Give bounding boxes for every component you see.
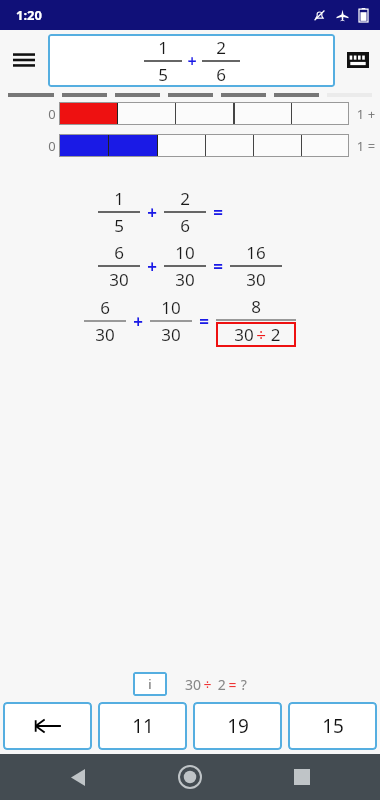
staticText: 15 xyxy=(322,713,344,739)
staticText: 19 xyxy=(227,713,249,739)
button[interactable]: Backspace xyxy=(3,702,92,750)
staticText: 30 xyxy=(161,323,181,346)
staticText: 1 = xyxy=(352,137,380,155)
button[interactable]: i xyxy=(133,672,167,696)
staticText: 2 xyxy=(180,187,190,210)
staticText: 6 xyxy=(100,296,110,319)
staticText: 1 + xyxy=(352,105,380,123)
staticText: 16 xyxy=(246,241,266,264)
staticText: 1 xyxy=(114,187,124,210)
staticText: 5 xyxy=(158,63,168,86)
staticText: 30 xyxy=(246,268,266,291)
staticText: 30 xyxy=(175,268,195,291)
staticText: 6 xyxy=(180,214,190,237)
staticText: 1:20 xyxy=(16,6,42,24)
staticText: 2 xyxy=(212,675,228,694)
staticText: + xyxy=(147,201,157,224)
staticText: + xyxy=(147,255,157,278)
staticText: ÷ xyxy=(203,675,212,694)
button[interactable]: 1 xyxy=(48,34,335,87)
staticText: 30 xyxy=(95,323,115,346)
button[interactable] xyxy=(59,102,349,125)
button[interactable]: 19 xyxy=(193,702,282,750)
staticText: 30 xyxy=(109,268,129,291)
staticText: 0 xyxy=(48,137,56,155)
button[interactable]: Home xyxy=(172,759,208,795)
button[interactable]: Keyboard xyxy=(335,30,380,90)
staticText: 2 xyxy=(216,36,226,59)
button[interactable]: Recents xyxy=(284,759,320,795)
staticText: 2 xyxy=(266,323,281,346)
staticText: 6 xyxy=(216,63,226,86)
staticText: ? xyxy=(237,675,247,694)
button[interactable]: Back xyxy=(60,759,96,795)
staticText: = xyxy=(213,201,223,224)
button[interactable] xyxy=(59,134,349,157)
staticText: 30 xyxy=(232,323,256,346)
staticText: 0 xyxy=(48,105,56,123)
staticText: = xyxy=(213,255,223,278)
staticText: 5 xyxy=(114,214,124,237)
staticText: 10 xyxy=(175,241,195,264)
staticText: 1 xyxy=(158,36,168,59)
staticText: 11 xyxy=(132,713,154,739)
button[interactable]: 11 xyxy=(98,702,187,750)
staticText: = xyxy=(199,310,209,333)
staticText: 8 xyxy=(251,295,261,318)
button[interactable]: 15 xyxy=(288,702,377,750)
staticText: 30 xyxy=(183,675,203,694)
staticText: + xyxy=(133,310,143,333)
staticText: i xyxy=(148,675,152,693)
staticText: 10 xyxy=(161,296,181,319)
button[interactable]: 30 xyxy=(216,322,296,347)
staticText: 6 xyxy=(114,241,124,264)
button[interactable]: Menu xyxy=(0,30,48,90)
staticText: ÷ xyxy=(256,323,266,346)
staticText: = xyxy=(228,675,237,694)
staticText: + xyxy=(187,50,197,72)
